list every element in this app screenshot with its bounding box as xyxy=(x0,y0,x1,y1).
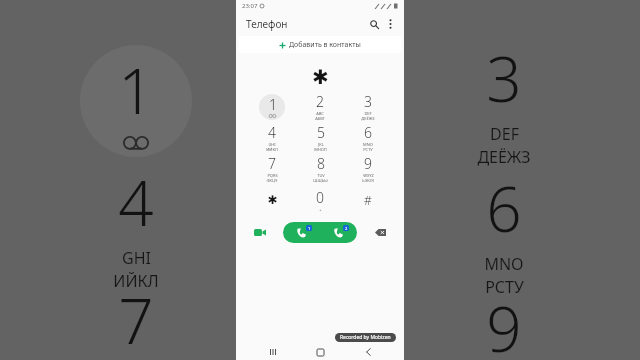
button[interactable]: 4 xyxy=(250,122,294,153)
staticText: 9 xyxy=(486,286,522,360)
staticText: 2 xyxy=(316,92,324,111)
staticText: 1 xyxy=(118,48,154,132)
staticText: GHI xyxy=(268,142,276,147)
button[interactable]: Backspace xyxy=(370,222,390,242)
staticText: ДЕЁЖЗ xyxy=(477,146,531,168)
staticText: МНОП xyxy=(314,147,327,152)
staticText: ДЕЁЖЗ xyxy=(361,116,375,121)
button[interactable]: Добавить в контакты xyxy=(239,36,401,53)
staticText: DEF xyxy=(490,123,519,145)
button[interactable]: More options xyxy=(383,17,397,31)
staticText: РСТУ xyxy=(485,276,524,298)
staticText: PQRS xyxy=(267,173,278,178)
staticText: ШЩЪЫ xyxy=(313,178,328,183)
button[interactable]: ✱ xyxy=(250,184,294,215)
staticText: Recorded by Mobizen xyxy=(340,334,391,341)
staticText: MNO xyxy=(363,142,373,147)
staticText: ✱ xyxy=(312,65,329,88)
button[interactable]: 6 xyxy=(346,122,390,153)
staticText: MNO xyxy=(484,253,524,275)
staticText: JKL xyxy=(318,142,324,147)
staticText: ЬЭЮЯ xyxy=(362,178,374,183)
staticText: 9 xyxy=(364,154,372,173)
staticText: ИЙКЛ xyxy=(113,270,159,292)
staticText: АБВГ xyxy=(315,116,325,121)
staticText: 7 xyxy=(118,278,154,360)
staticText: 1 xyxy=(269,95,277,114)
staticText: # xyxy=(364,192,372,208)
button[interactable]: 7 xyxy=(250,153,294,184)
button[interactable]: Video call xyxy=(250,222,270,242)
staticText: ✱ xyxy=(267,193,278,207)
button[interactable]: 3 xyxy=(346,91,390,122)
staticText: TUV xyxy=(317,173,325,178)
staticText: 5 xyxy=(317,123,325,142)
button[interactable]: Call with SIM 2 xyxy=(320,222,357,243)
button[interactable]: Home xyxy=(309,344,331,360)
button[interactable]: Back xyxy=(357,344,379,360)
button[interactable]: Recents xyxy=(262,344,284,360)
staticText: 23:07 xyxy=(242,2,258,10)
staticText: 1 xyxy=(308,226,311,231)
staticText: ФХЦЧ xyxy=(266,178,278,183)
staticText: ABC xyxy=(316,111,324,116)
staticText: 3 xyxy=(364,92,372,111)
staticText: 4 xyxy=(118,160,154,244)
button[interactable]: # xyxy=(346,184,390,215)
staticText: GHI xyxy=(122,247,151,269)
staticText: Телефон xyxy=(246,17,288,31)
button[interactable]: 0 xyxy=(298,184,342,215)
staticText: ИЙКЛ xyxy=(266,147,278,152)
button[interactable]: 9 xyxy=(346,153,390,184)
button[interactable]: 8 xyxy=(298,153,342,184)
button[interactable]: 2 xyxy=(298,91,342,122)
button[interactable]: Call with SIM 1 xyxy=(283,222,320,243)
staticText: 4 xyxy=(268,123,276,142)
staticText: + xyxy=(319,207,322,212)
staticText: 6 xyxy=(364,123,372,142)
button[interactable]: 5 xyxy=(298,122,342,153)
staticText: 8 xyxy=(317,154,325,173)
button[interactable]: 1 xyxy=(250,91,294,122)
staticText: 6 xyxy=(486,166,522,250)
staticText: 7 xyxy=(268,154,276,173)
staticText: РСТУ xyxy=(363,147,373,152)
staticText: 3 xyxy=(486,36,522,120)
staticText: 0 xyxy=(316,188,324,207)
staticText: WXYZ xyxy=(363,173,374,178)
staticText: 2 xyxy=(345,226,348,231)
staticText: Добавить в контакты xyxy=(289,40,361,50)
button[interactable]: Search xyxy=(365,15,383,33)
staticText: DEF xyxy=(364,111,372,116)
